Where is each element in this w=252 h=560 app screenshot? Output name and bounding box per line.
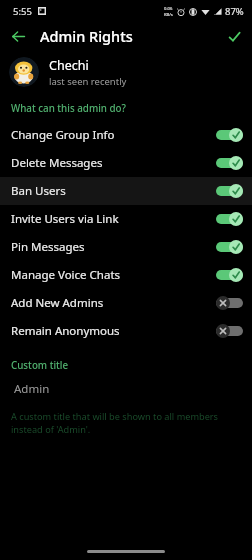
button[interactable]: Pin Messages xyxy=(0,233,252,261)
staticText: 0.06 xyxy=(164,6,173,12)
staticText: Manage Voice Chats xyxy=(11,267,121,283)
staticText: Add New Admins xyxy=(11,295,104,311)
staticText: Delete Messages xyxy=(11,155,103,171)
staticText: Admin Rights xyxy=(40,26,133,46)
button[interactable]: Chechi xyxy=(0,50,252,94)
button[interactable]: Ban Users xyxy=(0,177,252,205)
staticText: Pin Messages xyxy=(11,239,85,255)
staticText: Admin xyxy=(14,381,50,397)
staticText: KB/s xyxy=(164,12,173,18)
button[interactable]: Admin xyxy=(0,378,252,400)
button[interactable]: Change Group Info xyxy=(0,121,252,149)
button[interactable]: Save xyxy=(221,23,247,49)
staticText: Chechi xyxy=(49,57,89,74)
staticText: 87% xyxy=(225,5,244,18)
staticText: Custom title xyxy=(11,359,69,372)
staticText: Invite Users via Link xyxy=(11,211,119,227)
button[interactable]: Invite Users via Link xyxy=(0,205,252,233)
button[interactable]: Remain Anonymous xyxy=(0,317,252,345)
staticText: Change Group Info xyxy=(11,127,115,143)
staticText: A custom title that will be shown to all… xyxy=(11,410,241,436)
staticText: last seen recently xyxy=(49,75,127,88)
button[interactable]: Delete Messages xyxy=(0,149,252,177)
staticText: Ban Users xyxy=(11,183,66,199)
staticText: Remain Anonymous xyxy=(11,323,120,339)
button[interactable]: Back xyxy=(4,22,32,50)
staticText: What can this admin do? xyxy=(11,102,126,115)
staticText: 5:55 xyxy=(13,5,32,18)
button[interactable]: Add New Admins xyxy=(0,289,252,317)
button[interactable]: Manage Voice Chats xyxy=(0,261,252,289)
